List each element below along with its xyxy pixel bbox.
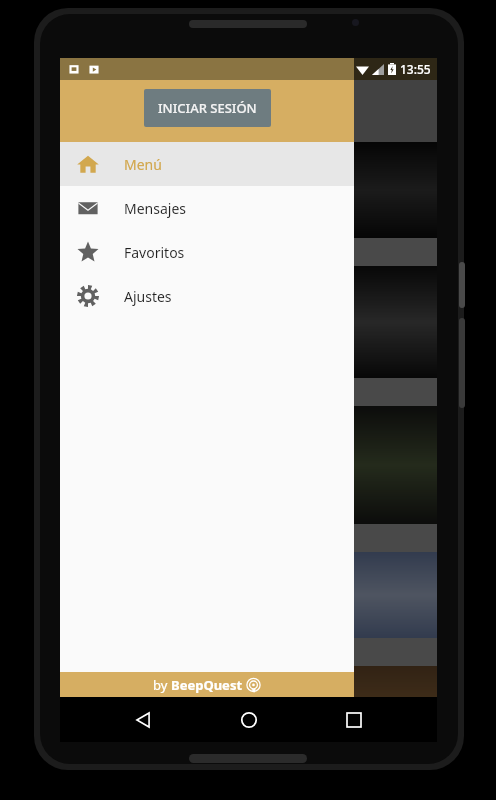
button[interactable]: Favoritos	[60, 230, 354, 274]
staticText: Menú	[124, 155, 162, 174]
button[interactable]: Menú	[60, 142, 354, 186]
staticText: INICIAR SESIÓN	[158, 99, 257, 117]
staticText: by	[153, 676, 171, 694]
staticText: Favoritos	[124, 243, 185, 262]
button[interactable]: Ajustes	[60, 274, 354, 318]
staticText: BeepQuest	[171, 676, 243, 694]
button[interactable]: Back	[120, 697, 166, 742]
button[interactable]: by	[60, 672, 354, 697]
button[interactable]: Home	[226, 697, 272, 742]
button[interactable]: Recent apps	[331, 697, 377, 742]
staticText: 13:55	[400, 61, 431, 77]
staticText: Mensajes	[124, 199, 187, 218]
button[interactable]: INICIAR SESIÓN	[144, 89, 271, 127]
button[interactable]: Mensajes	[60, 186, 354, 230]
staticText: Ajustes	[124, 287, 172, 306]
